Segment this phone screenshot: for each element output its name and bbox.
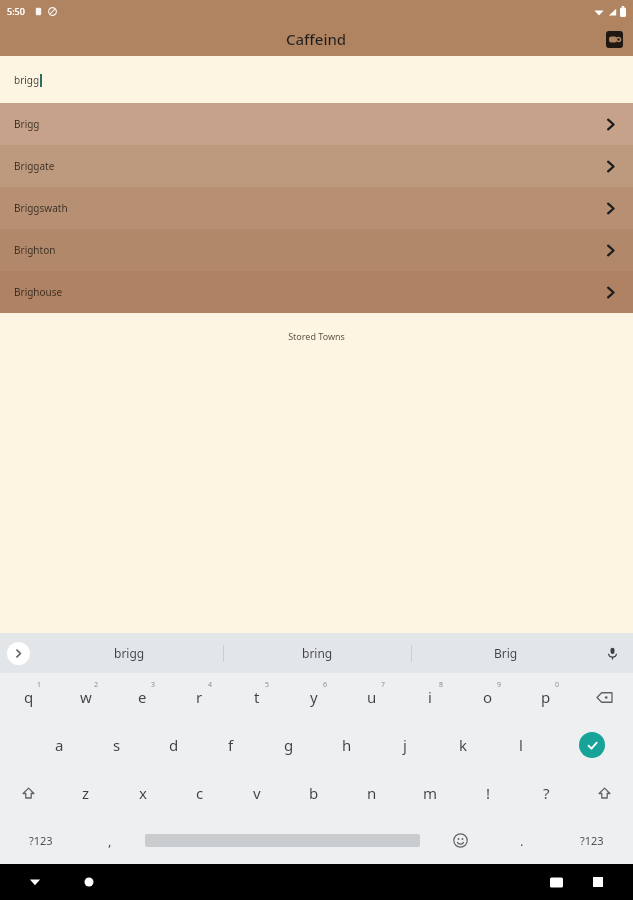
staticText: bring [302,645,333,661]
staticText: f [228,735,234,755]
staticText: 7 [381,680,386,690]
button[interactable]: k [434,721,492,769]
staticText: a [55,735,64,755]
staticText: z [82,783,90,803]
button[interactable]: Emoji [427,817,494,864]
button[interactable]: j [376,721,434,769]
staticText: Caffeind [286,29,347,49]
staticText: 9 [497,680,502,690]
staticText: e [138,687,147,707]
staticText: 1 [37,680,42,690]
staticText: 5:50 [7,5,25,17]
button[interactable]: ! [459,769,517,817]
button[interactable]: m [401,769,459,817]
button[interactable]: h [318,721,376,769]
staticText: b [309,783,319,803]
staticText: 4 [208,680,213,690]
button[interactable]: d [145,721,202,769]
staticText: l [519,735,523,755]
staticText: Briggswath [14,201,68,215]
button[interactable]: Brighouse [0,271,633,313]
button[interactable]: Space [138,817,427,864]
staticText: 2 [94,680,99,690]
staticText: brigg [114,645,145,661]
button[interactable]: q [0,673,57,721]
staticText: Brig [494,645,518,661]
staticText: q [24,687,34,707]
button[interactable]: r [171,673,228,721]
button[interactable]: Voice input [601,642,623,664]
button[interactable]: p [517,673,575,721]
staticText: s [113,735,121,755]
button[interactable]: l [492,721,550,769]
staticText: . [520,832,524,850]
button[interactable]: Brigg [0,103,633,145]
button[interactable]: i [401,673,459,721]
button[interactable]: Coffee menu [603,28,625,50]
button[interactable]: , [82,817,138,864]
staticText: k [459,735,468,755]
button[interactable]: Back [24,871,46,893]
button[interactable]: v [228,769,285,817]
staticText: h [342,735,352,755]
staticText: w [80,687,92,707]
staticText: ! [486,783,491,803]
button[interactable]: ?123 [0,817,82,864]
staticText: m [423,783,438,803]
button[interactable]: Keyboard [545,871,567,893]
button[interactable]: . [494,817,550,864]
staticText: 8 [439,680,444,690]
staticText: brigg [14,73,40,87]
button[interactable]: w [57,673,114,721]
button[interactable]: Brig [412,633,599,673]
button[interactable]: c [171,769,228,817]
button[interactable]: Briggswath [0,187,633,229]
staticText: d [169,735,179,755]
button[interactable]: Recents [587,871,609,893]
button[interactable]: Home [78,871,100,893]
staticText: ?123 [29,833,53,848]
button[interactable]: s [88,721,145,769]
button[interactable]: ?123 [550,817,633,864]
button[interactable]: ? [517,769,575,817]
staticText: j [403,735,407,755]
button[interactable]: u [343,673,401,721]
button[interactable]: Brighton [0,229,633,271]
staticText: t [254,687,260,707]
staticText: , [108,832,112,850]
staticText: ? [543,783,550,803]
button[interactable]: o [459,673,517,721]
button[interactable]: g [260,721,318,769]
staticText: 3 [151,680,156,690]
button[interactable]: y [285,673,343,721]
button[interactable]: Backspace [575,673,633,721]
staticText: 5 [265,680,270,690]
staticText: Brighouse [14,285,63,299]
button[interactable]: bring [224,633,411,673]
button[interactable]: a [31,721,88,769]
staticText: v [253,783,261,803]
button[interactable]: brigg [36,633,223,673]
staticText: Brighton [14,243,56,257]
button[interactable]: x [114,769,171,817]
button[interactable]: t [228,673,285,721]
button[interactable]: z [57,769,114,817]
staticText: y [310,687,318,707]
staticText: Stored Towns [288,330,345,342]
staticText: i [428,687,432,707]
button[interactable]: Briggate [0,145,633,187]
button[interactable]: b [285,769,343,817]
staticText: u [367,687,377,707]
button[interactable]: Shift [575,769,633,817]
button[interactable]: Shift [0,769,57,817]
button[interactable]: f [202,721,260,769]
staticText: r [196,687,203,707]
button[interactable]: Enter [550,721,633,769]
staticText: Brigg [14,117,40,131]
button[interactable]: More suggestions [7,642,30,665]
staticText: 0 [555,680,560,690]
staticText: Briggate [14,159,55,173]
button[interactable]: e [114,673,171,721]
button[interactable]: n [343,769,401,817]
staticText: n [367,783,377,803]
